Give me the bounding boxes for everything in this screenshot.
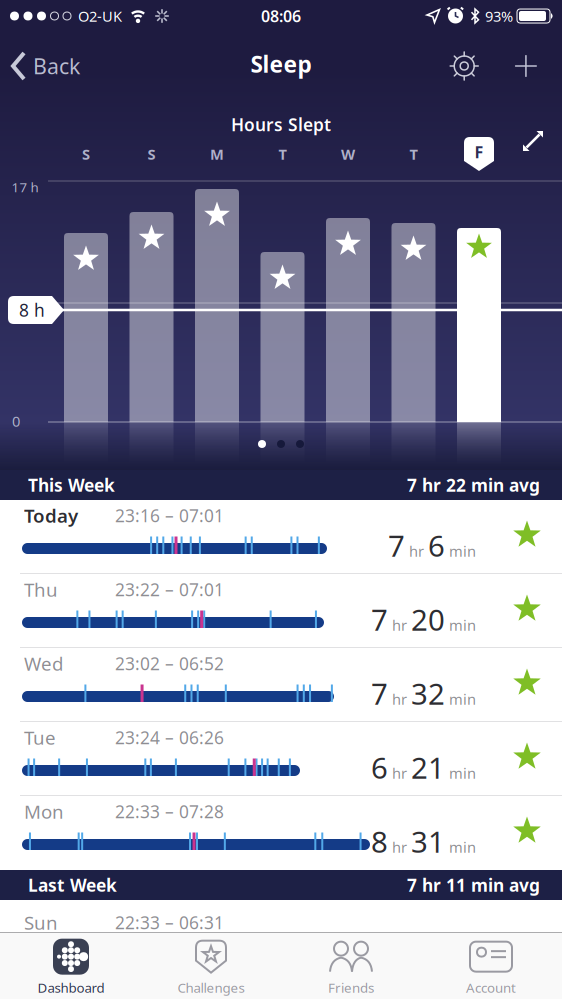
button[interactable]: Settings: [447, 49, 481, 83]
staticText: 7: [371, 674, 388, 713]
staticText: F: [474, 141, 483, 163]
staticText: 08:06: [261, 5, 301, 27]
staticText: min: [449, 763, 476, 783]
staticText: Friends: [328, 979, 374, 996]
staticText: W: [341, 144, 355, 164]
staticText: hr: [392, 837, 407, 857]
button[interactable]: Account: [421, 935, 561, 999]
staticText: 7 hr 11 min avg: [407, 873, 540, 896]
staticText: 23:24 – 06:26: [115, 726, 224, 749]
staticText: min: [449, 837, 476, 857]
staticText: This Week: [28, 473, 115, 496]
staticText: 23:16 – 07:01: [115, 504, 224, 527]
staticText: 6: [371, 748, 388, 787]
staticText: M: [210, 144, 224, 164]
staticText: hr: [392, 763, 407, 783]
button[interactable]: Friends: [281, 935, 421, 999]
staticText: 8 h: [19, 298, 45, 321]
staticText: Dashboard: [37, 979, 104, 996]
button[interactable]: Challenges: [141, 935, 281, 999]
staticText: Wed: [24, 651, 63, 676]
staticText: Challenges: [177, 979, 244, 996]
staticText: S: [147, 144, 155, 164]
staticText: T: [409, 144, 417, 164]
button[interactable]: Tue: [0, 722, 562, 796]
staticText: 31: [411, 822, 445, 861]
staticText: S: [82, 144, 90, 164]
staticText: Sleep: [250, 49, 311, 79]
staticText: hr: [392, 615, 407, 635]
staticText: 7 hr 22 min avg: [407, 473, 540, 496]
button[interactable]: Expand chart: [514, 122, 552, 160]
staticText: hr: [392, 689, 407, 709]
staticText: Last Week: [28, 873, 117, 896]
staticText: 6: [428, 526, 445, 565]
button[interactable]: Back: [0, 51, 80, 81]
staticText: 23:22 – 07:01: [115, 578, 224, 601]
button[interactable]: Mon: [0, 796, 562, 870]
staticText: 17 h: [11, 178, 38, 196]
staticText: Tue: [24, 725, 56, 750]
staticText: Hours Slept: [231, 113, 331, 136]
staticText: 7: [388, 526, 405, 565]
staticText: Mon: [24, 799, 64, 824]
staticText: Thu: [24, 577, 58, 602]
staticText: 22:33 – 07:28: [115, 800, 224, 823]
button[interactable]: Dashboard: [1, 935, 141, 999]
staticText: 32: [411, 674, 445, 713]
staticText: 21: [411, 748, 445, 787]
button[interactable]: Sun: [0, 900, 562, 932]
staticText: Back: [33, 52, 80, 80]
staticText: Today: [24, 503, 78, 528]
staticText: Sun: [24, 910, 58, 935]
button[interactable]: Today: [0, 500, 562, 574]
button[interactable]: Wed: [0, 648, 562, 722]
staticText: 93%: [485, 6, 513, 26]
staticText: min: [449, 541, 476, 561]
staticText: 20: [411, 600, 445, 639]
staticText: Account: [466, 979, 516, 996]
staticText: 22:33 – 06:31: [115, 911, 224, 934]
button[interactable]: Add: [481, 50, 562, 82]
staticText: min: [449, 689, 476, 709]
button[interactable]: Thu: [0, 574, 562, 648]
staticText: T: [278, 144, 286, 164]
staticText: 0: [12, 411, 20, 431]
staticText: 7: [371, 600, 388, 639]
staticText: O2-UK: [78, 6, 122, 26]
staticText: 23:02 – 06:52: [115, 652, 224, 675]
staticText: min: [449, 615, 476, 635]
staticText: 8: [371, 822, 388, 861]
staticText: hr: [409, 541, 424, 561]
